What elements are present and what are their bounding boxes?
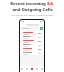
button[interactable]: Call xyxy=(40,27,43,30)
button[interactable]: Search contacts xyxy=(21,27,39,29)
button[interactable]: Call info xyxy=(20,47,44,51)
button[interactable]: Keypad xyxy=(34,66,39,72)
button[interactable]: Call info xyxy=(20,39,44,43)
button[interactable]: Call info xyxy=(20,35,44,39)
staticText: && xyxy=(47,1,54,7)
button[interactable]: Contacts xyxy=(29,66,34,72)
button[interactable]: Recents xyxy=(24,66,29,72)
button[interactable]: Call info xyxy=(20,51,44,55)
button[interactable]: Call info xyxy=(20,43,44,47)
button[interactable]: Favorites xyxy=(20,66,24,72)
staticText: The mobile call history, fast and simple xyxy=(11,14,53,17)
staticText: Recent incoming xyxy=(10,1,46,7)
staticText: and Outgoing Calls xyxy=(12,7,53,13)
button[interactable]: Voicemail xyxy=(39,66,44,72)
button[interactable]: Call info xyxy=(20,31,44,35)
